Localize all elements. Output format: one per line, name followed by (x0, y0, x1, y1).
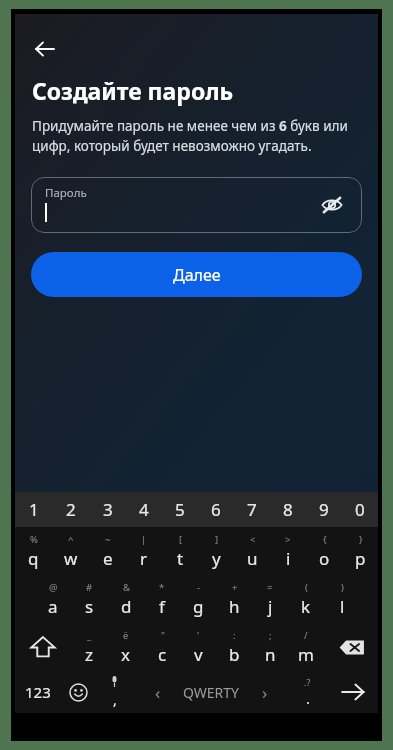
staticText: 8 (283, 498, 293, 521)
button[interactable]: _ (70, 623, 107, 671)
button[interactable]: [ (162, 527, 198, 575)
staticText: ' (197, 629, 200, 642)
staticText: › (262, 681, 268, 704)
staticText: q (28, 547, 39, 570)
button[interactable]: # (71, 575, 108, 623)
staticText: ) (341, 581, 344, 594)
button[interactable]: 4 (126, 492, 162, 527)
button[interactable]: 9 (306, 492, 342, 527)
staticText: | (141, 533, 147, 546)
button[interactable]: Назад (23, 27, 67, 71)
staticText: ё (123, 629, 129, 642)
staticText: : (233, 629, 236, 642)
staticText: . (306, 689, 310, 708)
button[interactable]: @ (34, 575, 71, 623)
staticText: ~ (105, 533, 111, 546)
button[interactable]: ) (324, 575, 360, 623)
staticText: } (359, 533, 363, 546)
button[interactable]: + (216, 575, 252, 623)
staticText: ( (305, 581, 308, 594)
staticText: > (285, 533, 291, 546)
button[interactable]: 6 (198, 492, 234, 527)
button[interactable]: Далее (31, 252, 362, 297)
staticText: % (30, 533, 38, 546)
staticText: 123 (25, 682, 51, 702)
button[interactable]: Удалить (324, 623, 378, 671)
staticText: c (158, 643, 167, 666)
staticText: Пароль (45, 185, 87, 201)
staticText: 5 (175, 498, 185, 521)
button[interactable]: 1 (15, 492, 52, 527)
staticText: " (161, 629, 165, 642)
button[interactable]: = (252, 575, 288, 623)
button[interactable]: 8 (270, 492, 306, 527)
staticText: { (323, 533, 327, 546)
button[interactable]: 0 (342, 492, 378, 527)
staticText: m (298, 643, 314, 666)
button[interactable]: " (144, 623, 180, 671)
button[interactable]: < (234, 527, 270, 575)
staticText: f (159, 595, 165, 618)
button[interactable]: & (108, 575, 144, 623)
button[interactable]: .? (288, 671, 327, 713)
staticText: w (64, 547, 78, 570)
staticText: # (86, 581, 93, 594)
button[interactable]: ^ (52, 527, 89, 575)
staticText: - (197, 581, 201, 594)
staticText: & (123, 581, 130, 594)
staticText: 0 (355, 498, 365, 521)
button[interactable]: 5 (162, 492, 198, 527)
button[interactable]: ] (198, 527, 234, 575)
staticText: [ (179, 533, 183, 546)
button[interactable]: ё (107, 623, 144, 671)
staticText: s (85, 595, 94, 618)
staticText: ] (215, 533, 219, 546)
button[interactable]: } (342, 527, 378, 575)
button[interactable]: ‹ (134, 671, 288, 713)
staticText: 9 (319, 498, 329, 521)
staticText: QWERTY (183, 683, 240, 702)
button[interactable]: | (126, 527, 162, 575)
button[interactable]: Эмодзи (61, 671, 95, 713)
staticText: d (121, 595, 132, 618)
staticText: i (286, 547, 291, 570)
staticText: k (301, 595, 311, 618)
button[interactable]: 7 (234, 492, 270, 527)
button[interactable]: ( (288, 575, 324, 623)
button[interactable]: { (306, 527, 342, 575)
staticText: ^ (68, 533, 74, 546)
button[interactable]: 2 (52, 492, 89, 527)
staticText: 7 (247, 498, 257, 521)
button[interactable]: % (15, 527, 52, 575)
button[interactable]: ' (180, 623, 216, 671)
button[interactable]: Пароль (31, 177, 362, 233)
button[interactable]: : (216, 623, 252, 671)
button[interactable]: 123 (15, 671, 61, 713)
staticText: a (48, 595, 58, 618)
button[interactable]: Shift (15, 623, 70, 671)
staticText: @ (49, 581, 58, 594)
staticText: r (140, 547, 148, 570)
button[interactable]: Показать пароль (314, 187, 350, 223)
staticText: e (103, 547, 113, 570)
button[interactable]: / (288, 623, 324, 671)
button[interactable]: * (144, 575, 180, 623)
button[interactable]: Ввод (327, 671, 378, 713)
staticText: g (193, 595, 204, 618)
button[interactable]: ; (252, 623, 288, 671)
staticText: , (113, 690, 117, 709)
staticText: 2 (66, 498, 76, 521)
button[interactable]: > (270, 527, 306, 575)
staticText: / (304, 629, 308, 642)
staticText: Создайте пароль (32, 75, 234, 106)
button[interactable]: , (95, 671, 134, 713)
staticText: = (267, 581, 273, 594)
staticText: j (268, 595, 273, 618)
button[interactable]: - (180, 575, 216, 623)
staticText: 3 (103, 498, 113, 521)
button[interactable]: ~ (89, 527, 126, 575)
staticText: ‹ (155, 681, 161, 704)
staticText: < (250, 533, 256, 546)
staticText: * (159, 581, 165, 594)
button[interactable]: 3 (89, 492, 126, 527)
